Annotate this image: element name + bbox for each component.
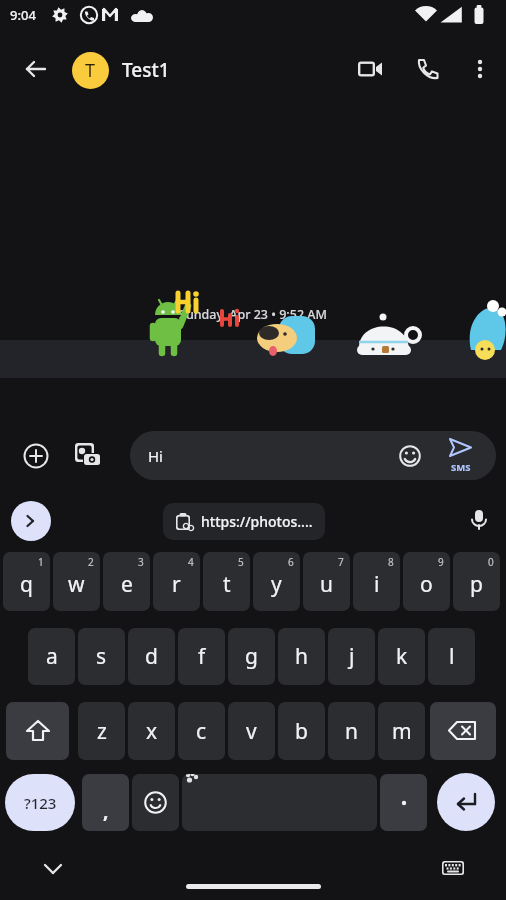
staticText: o — [420, 570, 433, 599]
button[interactable]: Switch keyboard — [432, 848, 474, 890]
staticText: , — [103, 798, 109, 824]
button[interactable]: l — [428, 628, 475, 685]
staticText: ?123 — [24, 793, 57, 813]
button[interactable]: https://photos.... — [163, 503, 325, 540]
button[interactable]: i — [353, 552, 400, 611]
button[interactable]: u — [303, 552, 350, 611]
staticText: SMS — [451, 461, 471, 474]
staticText: 5 — [238, 555, 244, 569]
staticText: T — [85, 58, 96, 83]
button[interactable]: Emoji — [392, 438, 428, 474]
button[interactable]: Back — [14, 47, 58, 91]
staticText: p — [470, 570, 483, 599]
button[interactable]: ?123 — [5, 774, 75, 831]
button[interactable]: k — [378, 628, 425, 685]
staticText: 1 — [38, 555, 44, 569]
staticText: m — [392, 717, 412, 746]
button[interactable]: Video call — [348, 47, 392, 91]
staticText: d — [145, 642, 158, 671]
staticText: q — [20, 570, 33, 599]
staticText: e — [121, 570, 133, 599]
button[interactable]: Comma — [82, 774, 129, 831]
button[interactable]: Send SMS — [437, 431, 485, 479]
button[interactable]: d — [128, 628, 175, 685]
button[interactable]: n — [328, 702, 375, 760]
button[interactable]: More options — [458, 47, 502, 91]
button[interactable]: Gallery — [66, 434, 110, 478]
staticText: z — [97, 717, 107, 746]
staticText: t — [223, 570, 231, 599]
staticText: r — [172, 570, 181, 599]
button[interactable]: z — [78, 702, 125, 760]
staticText: 6 — [288, 555, 294, 569]
button[interactable]: b — [278, 702, 325, 760]
button[interactable]: j — [328, 628, 375, 685]
staticText: l — [449, 642, 455, 671]
staticText: Sunday, Apr 23 • 9:52 AM — [179, 306, 327, 323]
staticText: y — [271, 570, 282, 599]
staticText: n — [345, 717, 358, 746]
staticText: h — [295, 642, 308, 671]
button[interactable]: e — [103, 552, 150, 611]
button[interactable]: T — [72, 48, 170, 92]
staticText: s — [96, 642, 107, 671]
button[interactable]: Call — [406, 47, 450, 91]
button[interactable]: Emoji keyboard — [132, 774, 179, 831]
button[interactable]: Add attachment — [14, 434, 58, 478]
button[interactable]: Space — [182, 774, 377, 831]
button[interactable]: v — [228, 702, 275, 760]
staticText: g — [245, 642, 258, 671]
staticText: j — [349, 642, 355, 671]
button[interactable]: c — [178, 702, 225, 760]
button[interactable]: y — [253, 552, 300, 611]
staticText: 7 — [338, 555, 344, 569]
button[interactable]: Hi — [130, 431, 496, 480]
staticText: 4 — [188, 555, 194, 569]
staticText: v — [246, 717, 257, 746]
button[interactable]: q — [3, 552, 50, 611]
staticText: 9 — [438, 555, 444, 569]
button[interactable]: x — [128, 702, 175, 760]
staticText: Hi — [148, 446, 163, 466]
staticText: https://photos.... — [201, 512, 313, 531]
button[interactable]: w — [53, 552, 100, 611]
button[interactable]: Shift — [6, 702, 69, 760]
button[interactable]: Backspace — [430, 702, 496, 760]
button[interactable]: m — [378, 702, 425, 760]
button[interactable]: p — [453, 552, 500, 611]
staticText: 2 — [88, 555, 94, 569]
button[interactable]: t — [203, 552, 250, 611]
staticText: f — [198, 642, 206, 671]
button[interactable]: r — [153, 552, 200, 611]
staticText: w — [68, 570, 85, 599]
button[interactable]: Enter — [437, 773, 495, 831]
staticText: u — [320, 570, 333, 599]
button[interactable]: s — [78, 628, 125, 685]
staticText: k — [396, 642, 408, 671]
staticText: c — [196, 717, 207, 746]
button[interactable]: a — [28, 628, 75, 685]
staticText: 0 — [488, 555, 494, 569]
button[interactable]: Voice input — [458, 499, 500, 541]
button[interactable]: h — [278, 628, 325, 685]
button[interactable]: Expand suggestions — [11, 501, 51, 541]
staticText: 8 — [388, 555, 394, 569]
staticText: a — [46, 642, 58, 671]
button[interactable]: Hide keyboard — [32, 848, 74, 890]
staticText: 9:04 — [10, 6, 36, 24]
staticText: b — [295, 717, 308, 746]
staticText: x — [146, 717, 158, 746]
button[interactable]: f — [178, 628, 225, 685]
button[interactable]: o — [403, 552, 450, 611]
button[interactable]: g — [228, 628, 275, 685]
button[interactable]: Period — [380, 774, 427, 831]
staticText: i — [374, 570, 380, 599]
staticText: Test1 — [122, 57, 170, 83]
staticText: 3 — [138, 555, 144, 569]
